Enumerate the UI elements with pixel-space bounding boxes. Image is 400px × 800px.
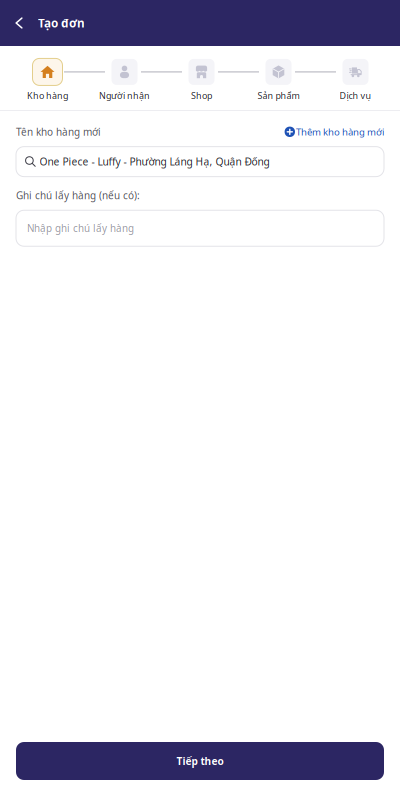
button[interactable]: Thêm kho hàng mới <box>285 125 384 138</box>
staticText: One Piece - Luffy - Phường Láng Hạ, Quận… <box>39 155 269 169</box>
staticText: Tên kho hàng mới <box>16 125 101 139</box>
staticText: Nhập ghi chú lấy hàng <box>27 221 134 235</box>
staticText: Sản phẩm <box>257 89 299 102</box>
button[interactable]: Sản phẩm <box>240 58 317 102</box>
staticText: Người nhận <box>99 89 150 102</box>
staticText: Tiếp theo <box>176 754 223 768</box>
staticText: Shop <box>191 89 212 102</box>
staticText: Dịch vụ <box>339 89 371 102</box>
staticText: Tạo đơn <box>38 15 85 31</box>
button[interactable]: Nhập ghi chú lấy hàng <box>16 210 384 246</box>
staticText: Ghi chú lấy hàng (nếu có): <box>16 189 140 202</box>
button[interactable]: Shop <box>163 58 240 102</box>
button[interactable]: Tiếp theo <box>16 742 384 780</box>
staticText: Kho hàng <box>27 89 68 102</box>
button[interactable]: One Piece - Luffy - Phường Láng Hạ, Quận… <box>16 147 384 177</box>
button[interactable]: Back <box>0 0 38 46</box>
button[interactable]: Dịch vụ <box>317 58 394 102</box>
button[interactable]: Kho hàng <box>9 58 86 102</box>
staticText: Thêm kho hàng mới <box>296 125 384 138</box>
button[interactable]: Người nhận <box>86 58 163 102</box>
